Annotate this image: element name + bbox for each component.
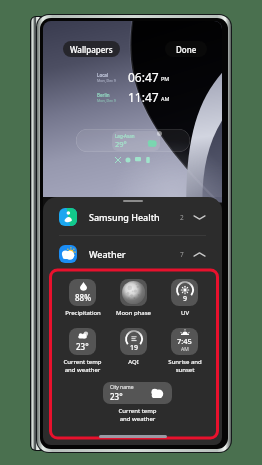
button[interactable]: Samsung Health (43, 199, 222, 235)
staticText: Berlin (97, 92, 110, 98)
staticText: 23° (110, 391, 123, 402)
button[interactable]: Done (165, 41, 207, 57)
button[interactable] (120, 279, 147, 306)
button[interactable]: Wallpapers (63, 41, 120, 57)
staticText: UV (181, 309, 189, 317)
staticText: PM (161, 75, 170, 82)
staticText: 19 (130, 343, 139, 353)
staticText: Moon phase (116, 309, 151, 317)
staticText: Precipitation (65, 309, 101, 317)
staticText: 23° (76, 341, 89, 352)
staticText: 88% (75, 292, 91, 303)
staticText: 7:45 (177, 336, 192, 346)
staticText: Lag-Asan (115, 133, 135, 139)
staticText: Weather (89, 248, 126, 260)
button[interactable]: 88% (69, 279, 96, 306)
staticText: AM (181, 346, 189, 353)
button[interactable]: Lag-Asan (76, 129, 190, 152)
button[interactable]: 9 (171, 279, 198, 306)
button[interactable]: 19 (120, 328, 147, 355)
staticText: 7 (180, 250, 184, 259)
staticText: Wallpapers (70, 44, 113, 55)
staticText: Sunrise and sunset (168, 358, 202, 374)
staticText: AM (161, 95, 170, 102)
button[interactable]: 23° (69, 328, 96, 355)
staticText: Mon, Dec 9 (97, 98, 116, 103)
staticText: Mon, Dec 9 (97, 78, 116, 83)
staticText: City name (110, 384, 134, 391)
staticText: 06:47 (128, 69, 159, 85)
staticText: Done (176, 44, 197, 55)
staticText: Current temp and weather (63, 358, 102, 374)
staticText: 11:47 (128, 89, 159, 105)
staticText: 29° (115, 139, 127, 149)
staticText: AQI (128, 358, 139, 366)
staticText: Local (97, 72, 109, 78)
button[interactable]: Weather (43, 236, 222, 272)
staticText: Current temp and weather (118, 407, 157, 423)
button[interactable]: City name (103, 382, 172, 404)
staticText: 2 (180, 213, 184, 222)
button[interactable]: 7:45 (171, 328, 198, 355)
staticText: Samsung Health (89, 211, 160, 223)
staticText: 9 (183, 294, 188, 304)
